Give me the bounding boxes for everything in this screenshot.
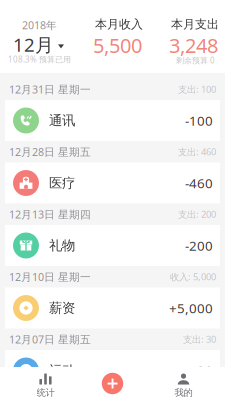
button[interactable]: 礼物 — [5, 225, 220, 266]
staticText: +5,000 — [169, 299, 213, 317]
staticText: 医疗 — [49, 175, 75, 191]
staticText: 支出: 100 — [178, 83, 216, 95]
staticText: 5,500 — [93, 32, 142, 59]
staticText: -200 — [185, 237, 213, 254]
staticText: 12月13日 星期四 — [9, 207, 91, 221]
button[interactable]: 医疗 — [5, 162, 220, 203]
button[interactable]: 通讯 — [5, 100, 220, 141]
staticText: 我的 — [174, 387, 192, 398]
staticText: 收入: 5,000 — [170, 271, 216, 283]
staticText: 礼物 — [49, 237, 75, 254]
staticText: 12月07日 星期五 — [9, 332, 91, 346]
staticText: 本月支出 — [171, 17, 219, 32]
staticText: 支出: 200 — [178, 208, 216, 220]
staticText: 2018年 — [22, 18, 57, 32]
staticText: 12月31日 星期一 — [9, 82, 91, 96]
button[interactable]: 运动 — [5, 350, 220, 391]
button[interactable]: 我的 — [146, 371, 221, 400]
staticText: -30 — [193, 362, 213, 379]
staticText: 支出: 460 — [178, 146, 216, 158]
staticText: -460 — [185, 174, 213, 192]
staticText: 12月 — [13, 32, 54, 57]
button[interactable]: Add transaction — [96, 367, 129, 400]
button[interactable]: 薪资 — [5, 287, 220, 328]
staticText: 108.3% 预算已用 — [8, 54, 71, 65]
staticText: 剩余预算 0 — [176, 55, 215, 66]
button[interactable]: 统计 — [8, 371, 83, 400]
staticText: 运动 — [49, 362, 75, 379]
button[interactable]: 12月 — [11, 32, 66, 57]
staticText: -100 — [185, 112, 213, 129]
staticText: 支出: 30 — [183, 333, 216, 345]
staticText: 12月28日 星期五 — [9, 145, 91, 159]
staticText: 3,248 — [169, 32, 218, 59]
staticText: 统计 — [36, 387, 54, 398]
staticText: 薪资 — [49, 300, 75, 316]
staticText: 12月10日 星期一 — [9, 270, 91, 284]
staticText: 本月收入 — [95, 17, 143, 32]
staticText: 通讯 — [49, 112, 75, 129]
